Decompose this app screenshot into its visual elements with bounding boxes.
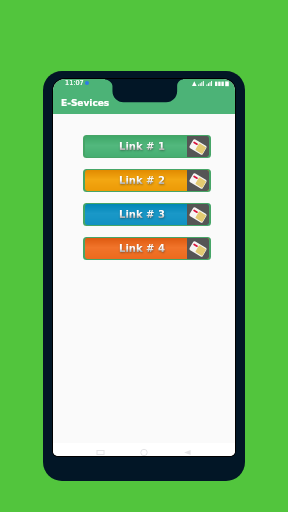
staticText: 11:07 xyxy=(65,79,84,87)
button[interactable]: Link # 4 xyxy=(83,237,211,260)
button[interactable]: Link # 1 xyxy=(83,135,211,158)
staticText: Link # 4 xyxy=(119,243,165,255)
staticText: Link # 3 xyxy=(119,209,165,221)
button[interactable]: Link # 3 xyxy=(83,203,211,226)
staticText: Link # 1 xyxy=(119,141,165,153)
staticText: E-Sevices xyxy=(61,98,110,108)
staticText: Link # 2 xyxy=(119,175,165,187)
button[interactable]: Link # 2 xyxy=(83,169,211,192)
